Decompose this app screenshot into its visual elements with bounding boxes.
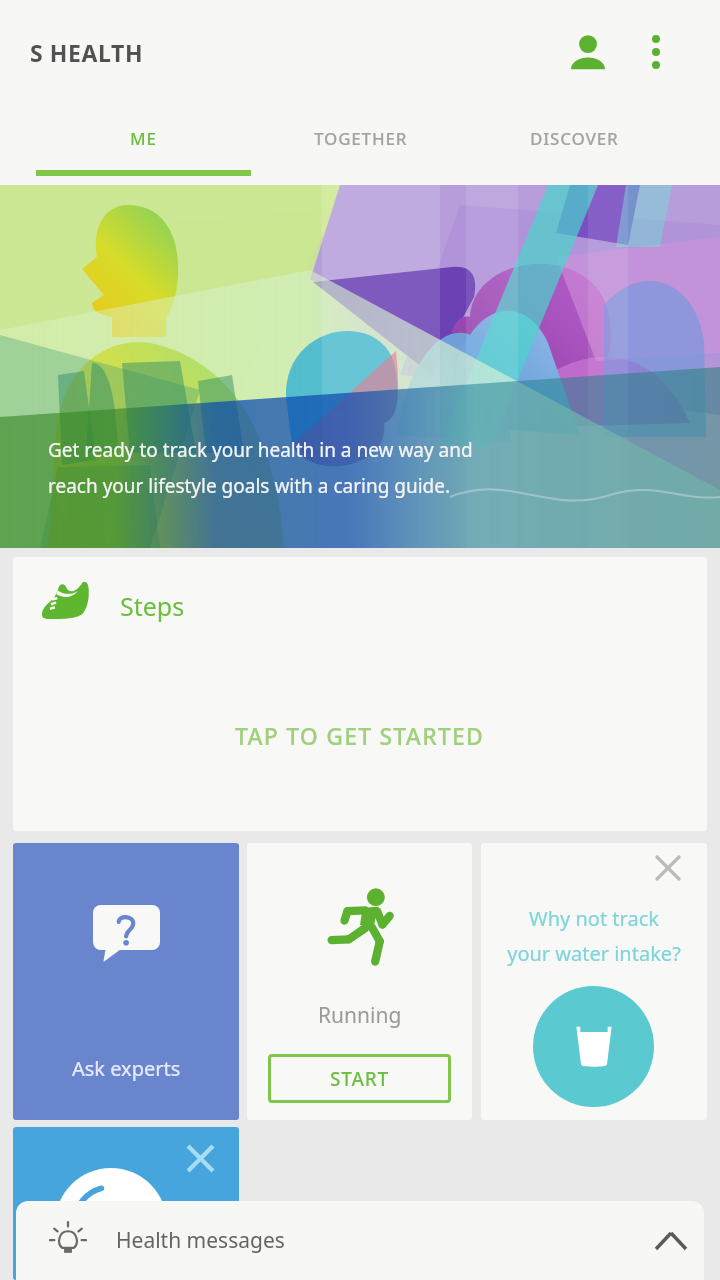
staticText: DISCOVER (530, 127, 619, 150)
staticText: Steps (120, 589, 185, 623)
button[interactable]: More options (624, 20, 688, 84)
button[interactable]: Ask experts (13, 843, 239, 1120)
button[interactable]: Running (247, 843, 472, 1120)
button[interactable]: Close (175, 1133, 225, 1183)
button[interactable]: DISCOVER (467, 104, 682, 185)
button[interactable] (533, 986, 654, 1107)
button[interactable]: Get ready to track your health in a new … (0, 185, 720, 548)
button[interactable]: ME (36, 104, 251, 185)
button[interactable]: Steps (13, 557, 707, 831)
button[interactable]: START (268, 1054, 451, 1103)
staticText: Why not track your water intake? (507, 905, 681, 967)
staticText: Ask experts (72, 1055, 181, 1082)
staticText: TAP TO GET STARTED (235, 720, 485, 751)
staticText: Running (318, 1001, 402, 1030)
staticText: Get ready to track your health in a new … (48, 437, 473, 463)
button[interactable]: Health messages (16, 1201, 704, 1280)
button[interactable]: Expand (638, 1208, 704, 1274)
button[interactable]: Close (13, 1127, 239, 1280)
button[interactable]: Profile (552, 16, 624, 88)
staticText: S HEALTH (30, 37, 144, 68)
staticText: Health messages (116, 1226, 285, 1255)
staticText: reach your lifestyle goals with a caring… (48, 473, 451, 499)
staticText: ME (130, 127, 157, 150)
button[interactable]: Close (643, 843, 693, 893)
button[interactable]: TOGETHER (253, 104, 468, 185)
button[interactable]: Close (481, 843, 707, 1120)
staticText: TOGETHER (314, 127, 408, 150)
staticText: START (330, 1066, 389, 1092)
